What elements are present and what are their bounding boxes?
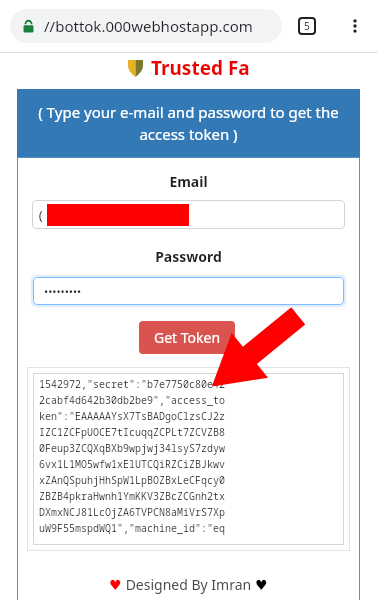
staticText: Email <box>17 172 360 191</box>
staticText: 5 <box>304 19 310 33</box>
staticText: Get Token <box>154 328 221 347</box>
staticText: ( <box>32 206 43 224</box>
staticText: Trusted Fa <box>151 55 250 81</box>
staticText: Designed By Imran <box>122 575 255 594</box>
button[interactable]: ( <box>32 200 345 229</box>
staticText: Password <box>17 247 360 266</box>
staticText: 1542972,"secret":"b7e7750c80e42 2cabf4d6… <box>39 377 225 535</box>
staticText: ♥ <box>255 577 268 593</box>
staticText: ••••••••• <box>44 284 82 299</box>
button[interactable]: More options <box>342 13 368 39</box>
button[interactable]: Get Token <box>139 321 235 354</box>
button[interactable]: Tabs <box>296 15 318 37</box>
button[interactable]: ••••••••• <box>33 277 344 305</box>
staticText: //bottok.000webhostapp.com <box>44 16 253 36</box>
staticText: ( Type your e-mail and password to get t… <box>38 102 339 145</box>
staticText: ♥ <box>109 577 122 593</box>
button[interactable]: //bottok.000webhostapp.com <box>10 9 282 43</box>
